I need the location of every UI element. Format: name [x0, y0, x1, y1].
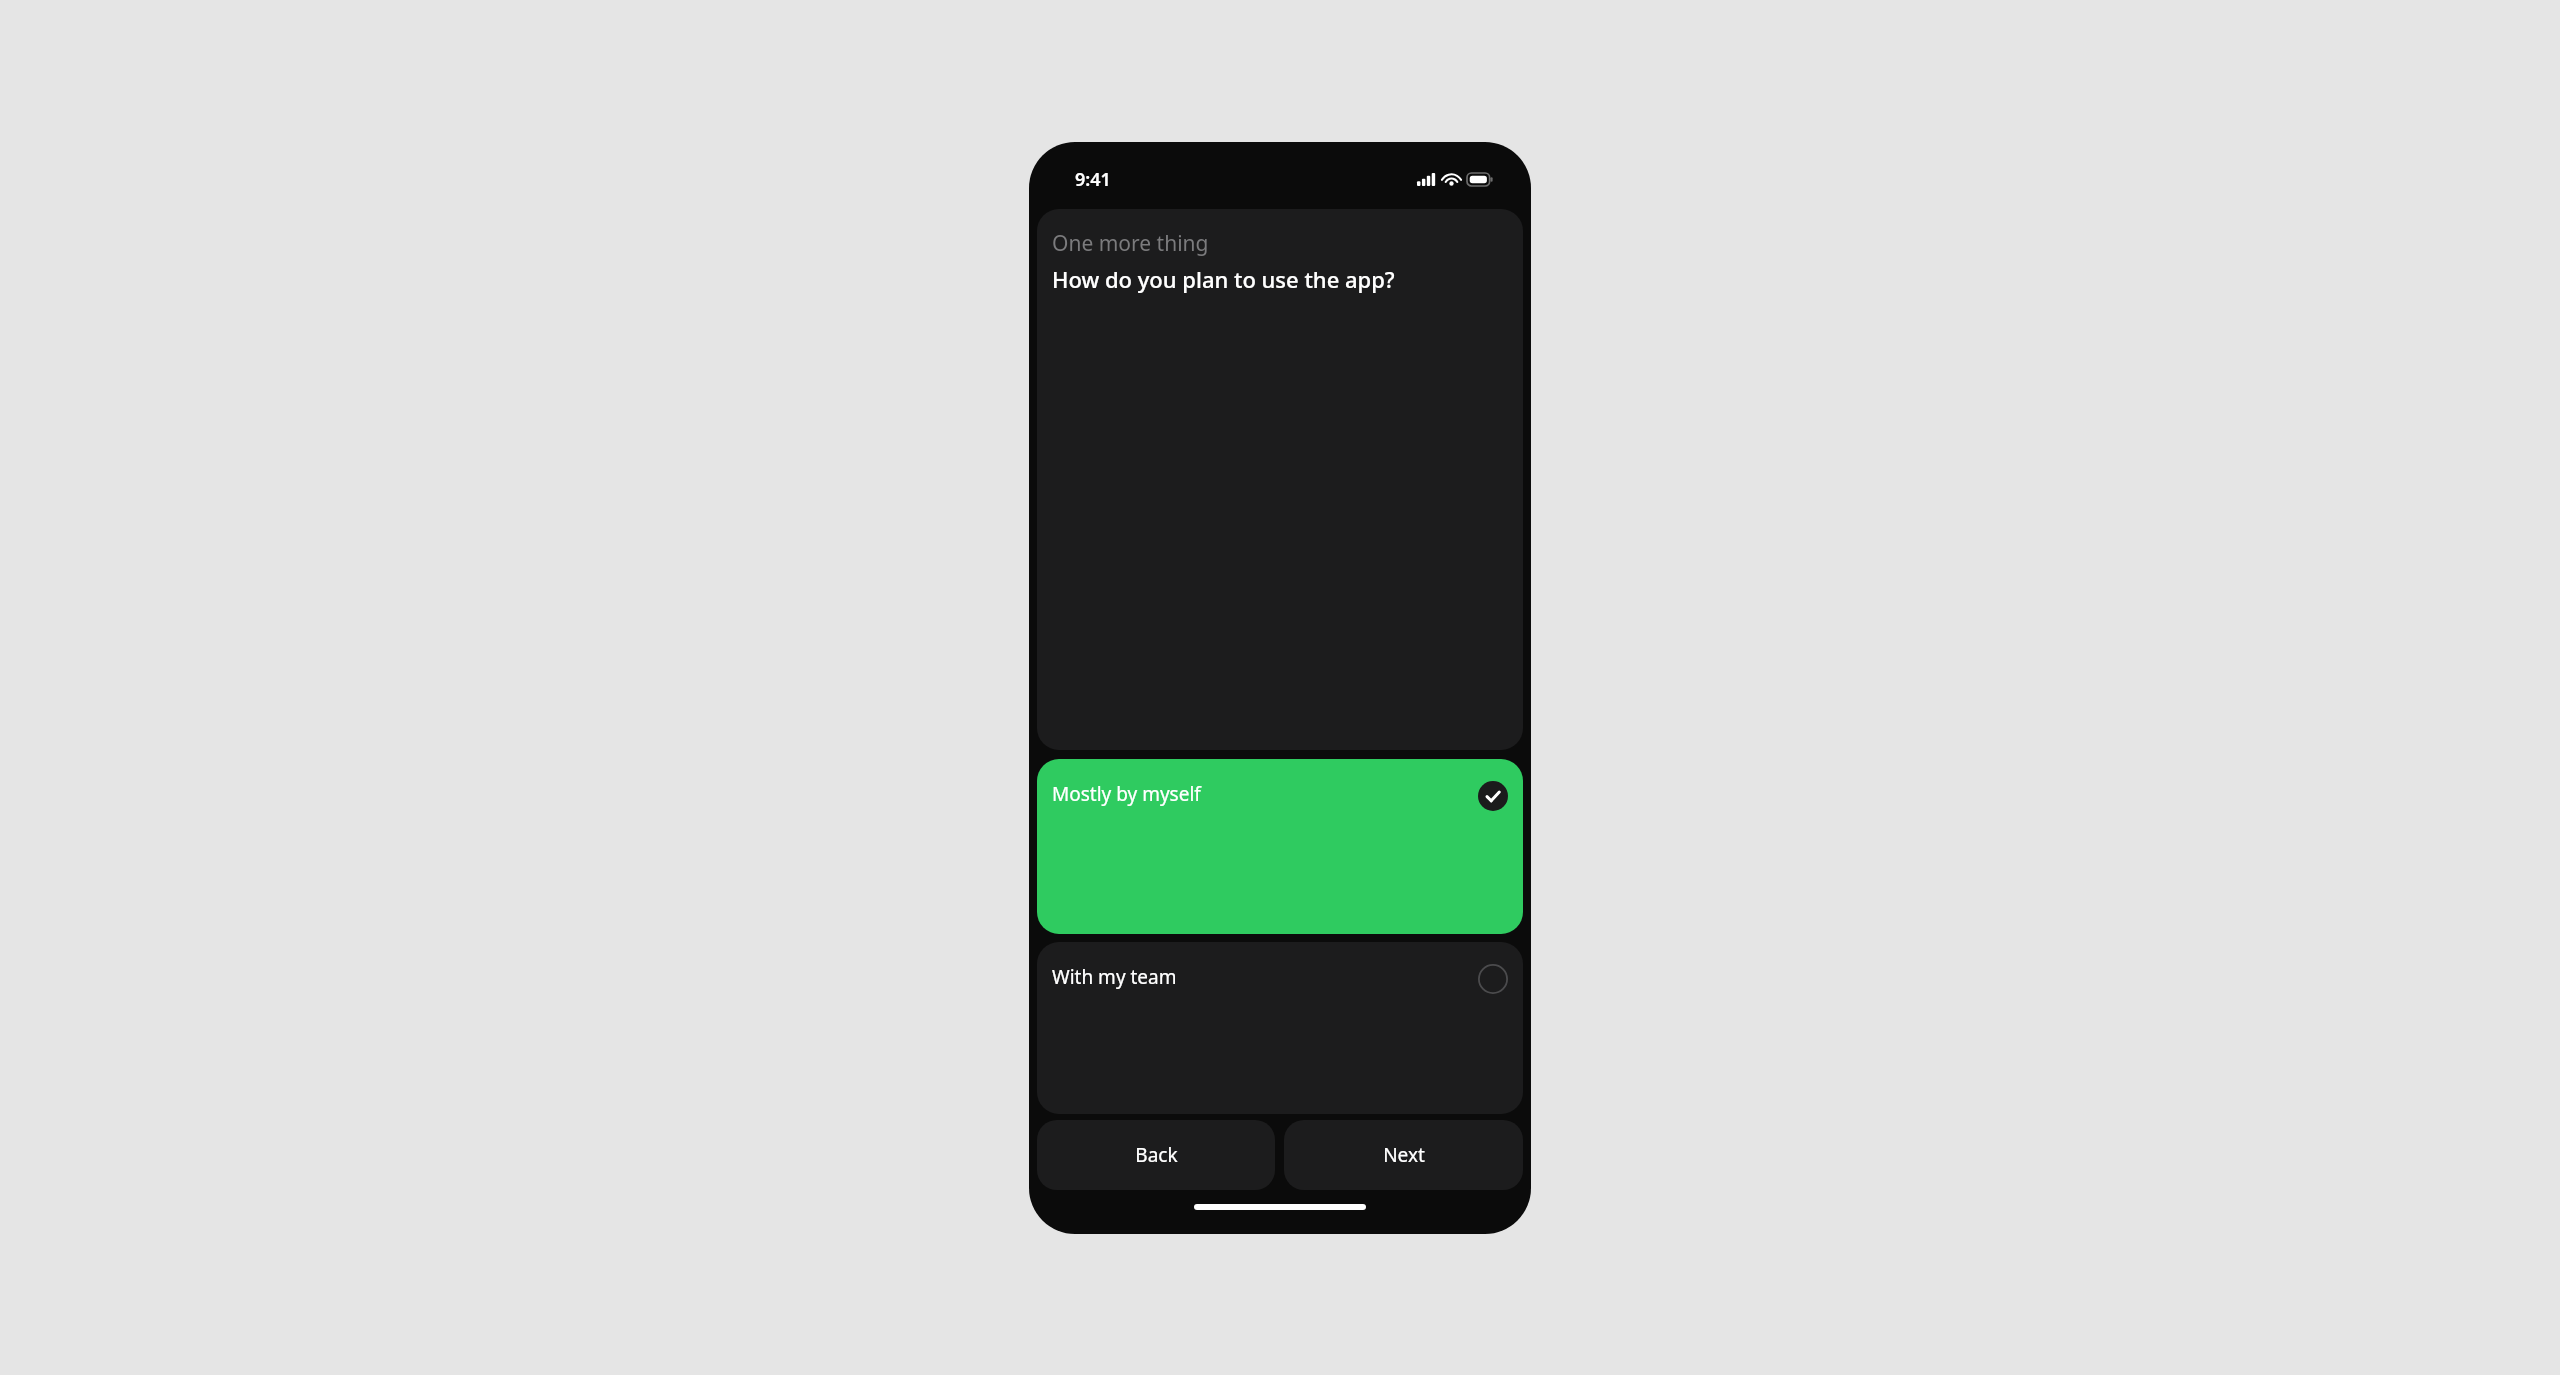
staticText: Back	[1135, 1142, 1178, 1168]
button[interactable]: Mostly by myself	[1037, 759, 1523, 934]
other: Not selected	[1478, 964, 1508, 994]
button[interactable]: Back	[1037, 1120, 1275, 1190]
staticText: 9:41	[1075, 167, 1111, 192]
button[interactable]: Next	[1284, 1120, 1523, 1190]
button[interactable]: With my team	[1037, 942, 1523, 1114]
staticText: Next	[1383, 1142, 1425, 1168]
staticText: With my team	[1052, 964, 1177, 990]
other: Selected	[1478, 781, 1508, 811]
staticText: Mostly by myself	[1052, 781, 1201, 807]
staticText: How do you plan to use the app?	[1052, 264, 1395, 294]
staticText: One more thing	[1052, 229, 1209, 258]
